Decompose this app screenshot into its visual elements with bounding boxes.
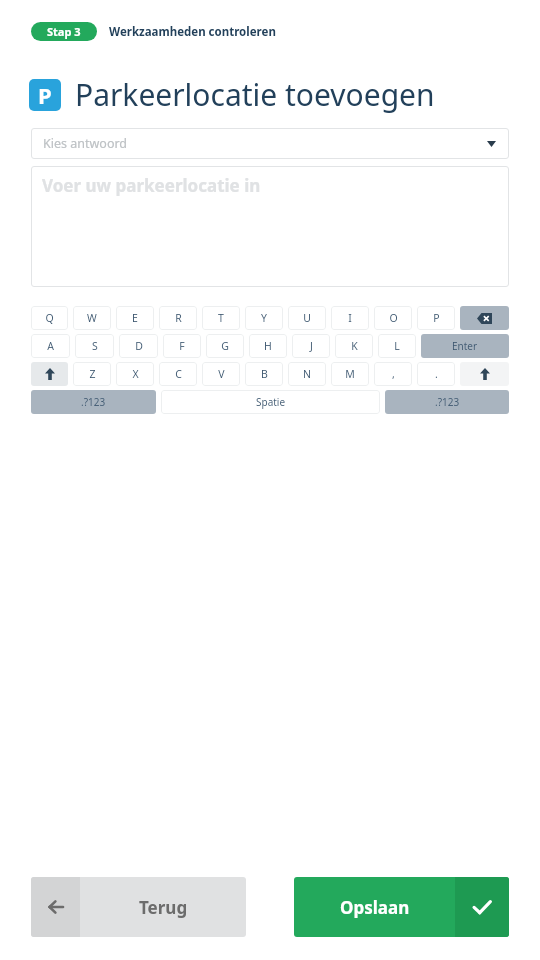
button[interactable]: O <box>374 306 412 330</box>
staticText: , <box>392 367 395 381</box>
button[interactable]: Kies antwoord <box>31 128 509 159</box>
button[interactable]: A <box>31 334 70 358</box>
button[interactable]: Terug <box>31 877 246 937</box>
staticText: Z <box>89 367 96 381</box>
button[interactable]: E <box>116 306 154 330</box>
staticText: P <box>433 311 440 325</box>
button[interactable]: .?123 <box>385 390 509 414</box>
staticText: W <box>87 311 97 325</box>
staticText: Werkzaamheden controleren <box>109 24 276 40</box>
button[interactable]: F <box>163 334 201 358</box>
button[interactable]: U <box>288 306 326 330</box>
button[interactable]: P <box>417 306 455 330</box>
button[interactable]: Q <box>31 306 68 330</box>
staticText: K <box>351 339 358 353</box>
button[interactable]: , <box>374 362 412 386</box>
staticText: T <box>218 311 224 325</box>
staticText: . <box>435 367 438 381</box>
button[interactable]: R <box>159 306 197 330</box>
button[interactable]: I <box>331 306 369 330</box>
staticText: Q <box>45 311 54 325</box>
staticText: J <box>310 339 313 353</box>
staticText: Stap 3 <box>47 24 81 39</box>
button[interactable]: J <box>292 334 330 358</box>
button[interactable]: Opslaan <box>294 877 509 937</box>
staticText: .?123 <box>435 395 460 409</box>
button[interactable]: Enter <box>421 334 509 358</box>
button[interactable]: Voer uw parkeerlocatie in <box>31 166 509 287</box>
staticText: O <box>389 311 398 325</box>
button[interactable]: .?123 <box>31 390 156 414</box>
staticText: Opslaan <box>340 896 410 919</box>
button[interactable]: N <box>288 362 326 386</box>
staticText: A <box>47 339 54 353</box>
staticText: F <box>179 339 185 353</box>
button[interactable]: Stap 3 <box>31 22 97 41</box>
staticText: M <box>345 367 355 381</box>
staticText: D <box>135 339 143 353</box>
staticText: U <box>303 311 311 325</box>
staticText: Enter <box>452 339 478 353</box>
button[interactable]: B <box>245 362 283 386</box>
staticText: Terug <box>139 896 188 919</box>
button[interactable]: Backspace <box>460 306 509 330</box>
button[interactable]: L <box>378 334 416 358</box>
button[interactable]: Shift <box>31 362 68 386</box>
button[interactable]: G <box>206 334 244 358</box>
staticText: R <box>175 311 182 325</box>
button[interactable]: Z <box>73 362 111 386</box>
staticText: G <box>221 339 229 353</box>
staticText: Spatie <box>256 395 286 409</box>
button[interactable]: Shift <box>460 362 509 386</box>
staticText: I <box>348 311 352 325</box>
staticText: C <box>175 367 182 381</box>
staticText: Kies antwoord <box>43 135 128 152</box>
button[interactable]: Spatie <box>161 390 380 414</box>
button[interactable]: T <box>202 306 240 330</box>
staticText: X <box>132 367 139 381</box>
staticText: E <box>132 311 138 325</box>
staticText: V <box>218 367 225 381</box>
staticText: Parkeerlocatie toevoegen <box>75 74 435 115</box>
button[interactable]: . <box>417 362 455 386</box>
staticText: P <box>38 80 52 110</box>
staticText: L <box>394 339 400 353</box>
button[interactable]: D <box>119 334 158 358</box>
staticText: S <box>92 339 98 353</box>
staticText: .?123 <box>81 395 106 409</box>
button[interactable]: H <box>249 334 287 358</box>
button[interactable]: K <box>335 334 373 358</box>
staticText: N <box>303 367 311 381</box>
button[interactable]: C <box>159 362 197 386</box>
staticText: Y <box>261 311 267 325</box>
button[interactable]: V <box>202 362 240 386</box>
staticText: H <box>264 339 272 353</box>
button[interactable]: W <box>73 306 111 330</box>
button[interactable]: M <box>331 362 369 386</box>
button[interactable]: Y <box>245 306 283 330</box>
button[interactable]: X <box>116 362 154 386</box>
staticText: B <box>261 367 268 381</box>
staticText: Voer uw parkeerlocatie in <box>42 174 261 197</box>
button[interactable]: S <box>75 334 114 358</box>
